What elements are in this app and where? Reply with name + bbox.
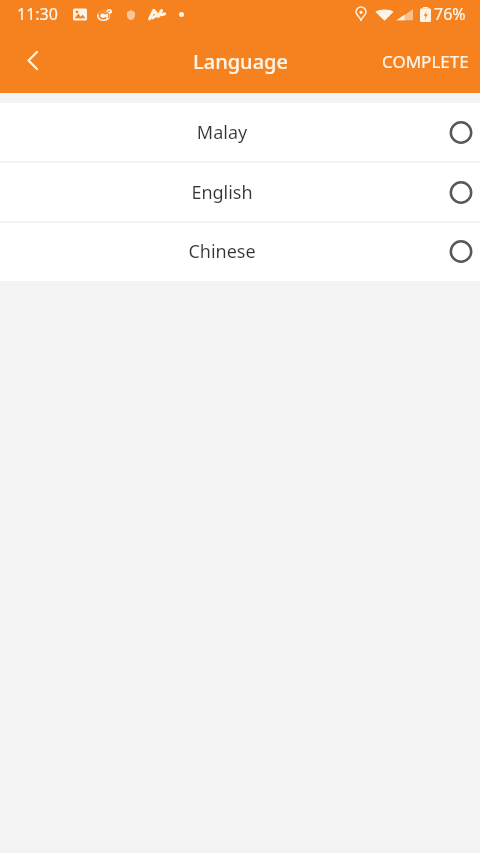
button[interactable]: Chinese — [0, 223, 480, 281]
button[interactable]: Back — [14, 42, 50, 78]
staticText: English — [0, 180, 444, 205]
button[interactable]: COMPLETE — [368, 37, 480, 84]
staticText: 76% — [434, 3, 466, 25]
staticText: COMPLETE — [382, 50, 469, 73]
staticText: Language — [193, 48, 288, 75]
button[interactable]: Malay — [0, 103, 480, 163]
staticText: 11:30 — [17, 3, 58, 25]
staticText: Chinese — [0, 239, 444, 264]
button[interactable]: English — [0, 163, 480, 223]
staticText: Malay — [0, 120, 444, 145]
